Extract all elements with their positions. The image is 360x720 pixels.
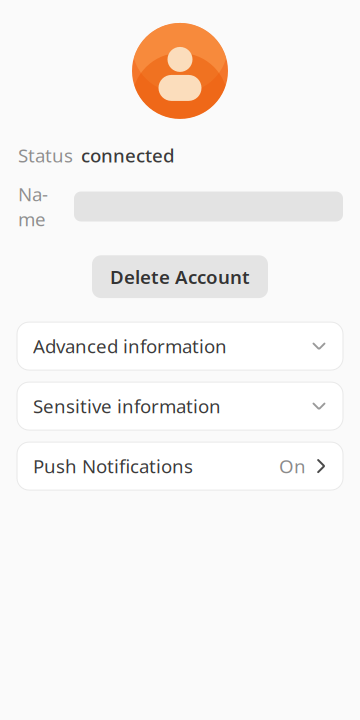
staticText: On <box>279 454 306 478</box>
staticText: connected <box>81 143 175 168</box>
button[interactable]: Sensitive information <box>17 382 343 430</box>
button[interactable]: Delete Account <box>92 255 268 298</box>
button[interactable]: Advanced information <box>17 322 343 370</box>
staticText: Push Notifications <box>33 454 193 478</box>
staticText: Sensitive information <box>33 394 221 418</box>
staticText: Advanced information <box>33 334 227 358</box>
staticText: Delete Account <box>110 264 250 289</box>
staticText: Status <box>18 143 73 168</box>
button[interactable]: Push Notifications <box>17 442 343 490</box>
staticText: Name <box>18 182 48 231</box>
